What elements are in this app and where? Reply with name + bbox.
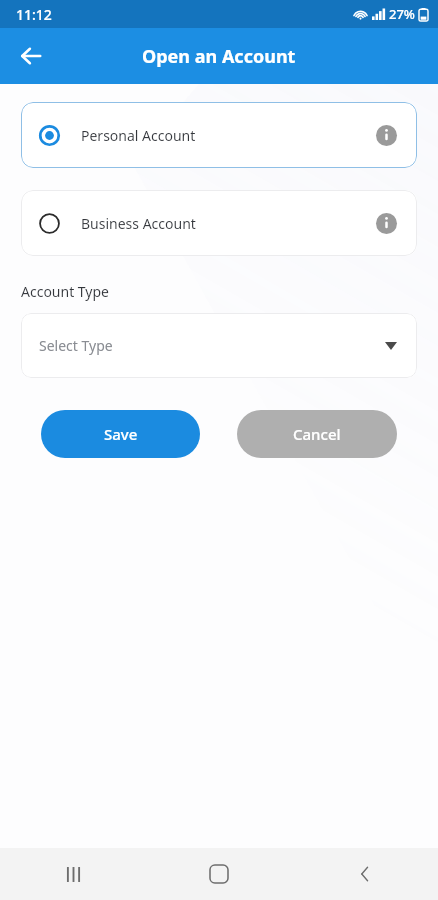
staticText: Save	[104, 424, 138, 444]
button[interactable]: Recents	[0, 848, 146, 900]
button[interactable]: Select Type	[21, 313, 417, 378]
staticText: Personal Account	[81, 126, 196, 145]
button[interactable]: Home	[146, 848, 292, 900]
button[interactable]: Personal Account	[21, 102, 417, 168]
button[interactable]: Back	[292, 848, 438, 900]
staticText: 11:12	[16, 5, 52, 24]
staticText: Select Type	[39, 336, 113, 355]
button[interactable]: More information	[373, 122, 399, 148]
button[interactable]: Save	[41, 410, 200, 458]
staticText: 27%	[389, 5, 415, 23]
button[interactable]: Business Account	[21, 190, 417, 256]
button[interactable]: Back	[8, 33, 54, 79]
staticText: Cancel	[293, 424, 341, 444]
staticText: Business Account	[81, 214, 196, 233]
staticText: Account Type	[21, 282, 110, 301]
staticText: Open an Account	[142, 44, 296, 69]
button[interactable]: Cancel	[237, 410, 397, 458]
button[interactable]: More information	[373, 210, 399, 236]
